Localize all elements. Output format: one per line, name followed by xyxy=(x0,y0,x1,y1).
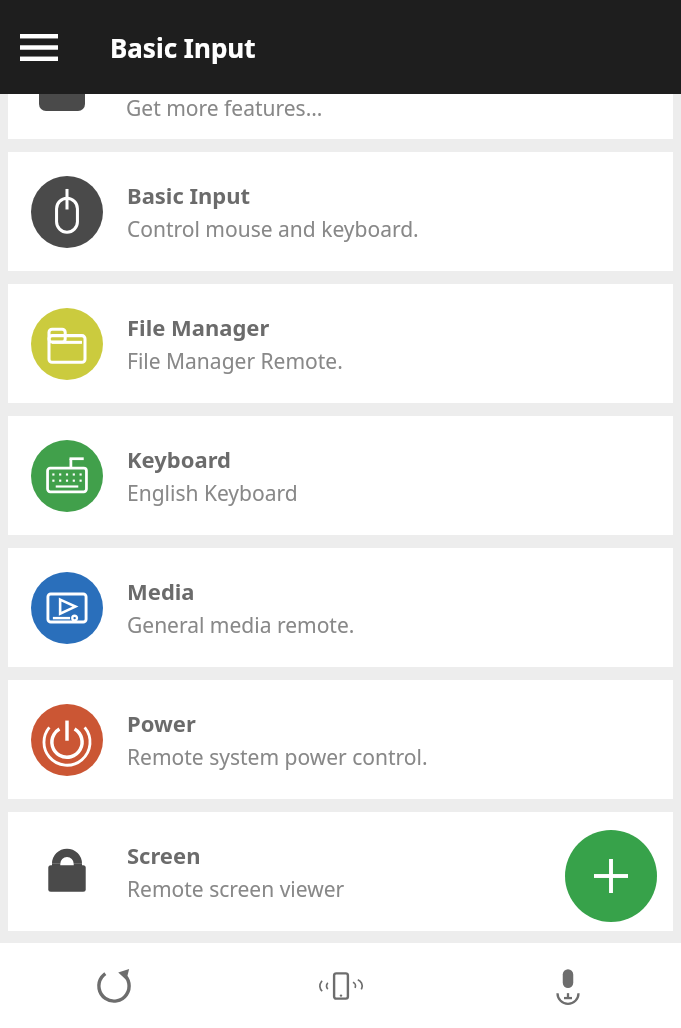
staticText: Keyboard xyxy=(127,444,231,474)
staticText: Control mouse and keyboard. xyxy=(127,215,419,244)
button[interactable]: Screen xyxy=(8,812,673,931)
staticText: Basic Input xyxy=(110,30,256,65)
button[interactable]: File Manager xyxy=(8,284,673,403)
staticText: Remote screen viewer xyxy=(127,875,345,904)
button[interactable]: Keyboard xyxy=(8,416,673,535)
staticText: File Manager xyxy=(127,312,270,342)
staticText: Power xyxy=(127,708,196,738)
staticText: Get more features… xyxy=(126,94,323,123)
staticText: General media remote. xyxy=(127,611,355,640)
button[interactable]: Power xyxy=(8,680,673,799)
button[interactable]: Vibrate device xyxy=(227,943,454,1028)
staticText: File Manager Remote. xyxy=(127,347,343,376)
button[interactable]: Media xyxy=(8,548,673,667)
staticText: Basic Input xyxy=(127,180,251,210)
staticText: Remote system power control. xyxy=(127,743,428,772)
button[interactable]: Open navigation menu xyxy=(12,20,66,74)
staticText: English Keyboard xyxy=(127,479,298,508)
button[interactable]: Basic Input xyxy=(8,152,673,271)
button[interactable]: Voice input xyxy=(454,943,681,1028)
button[interactable]: Get more features… xyxy=(8,94,673,139)
button[interactable]: Refresh xyxy=(0,943,227,1028)
staticText: Media xyxy=(127,576,195,606)
button[interactable]: Add xyxy=(565,830,657,922)
staticText: Screen xyxy=(127,840,201,870)
